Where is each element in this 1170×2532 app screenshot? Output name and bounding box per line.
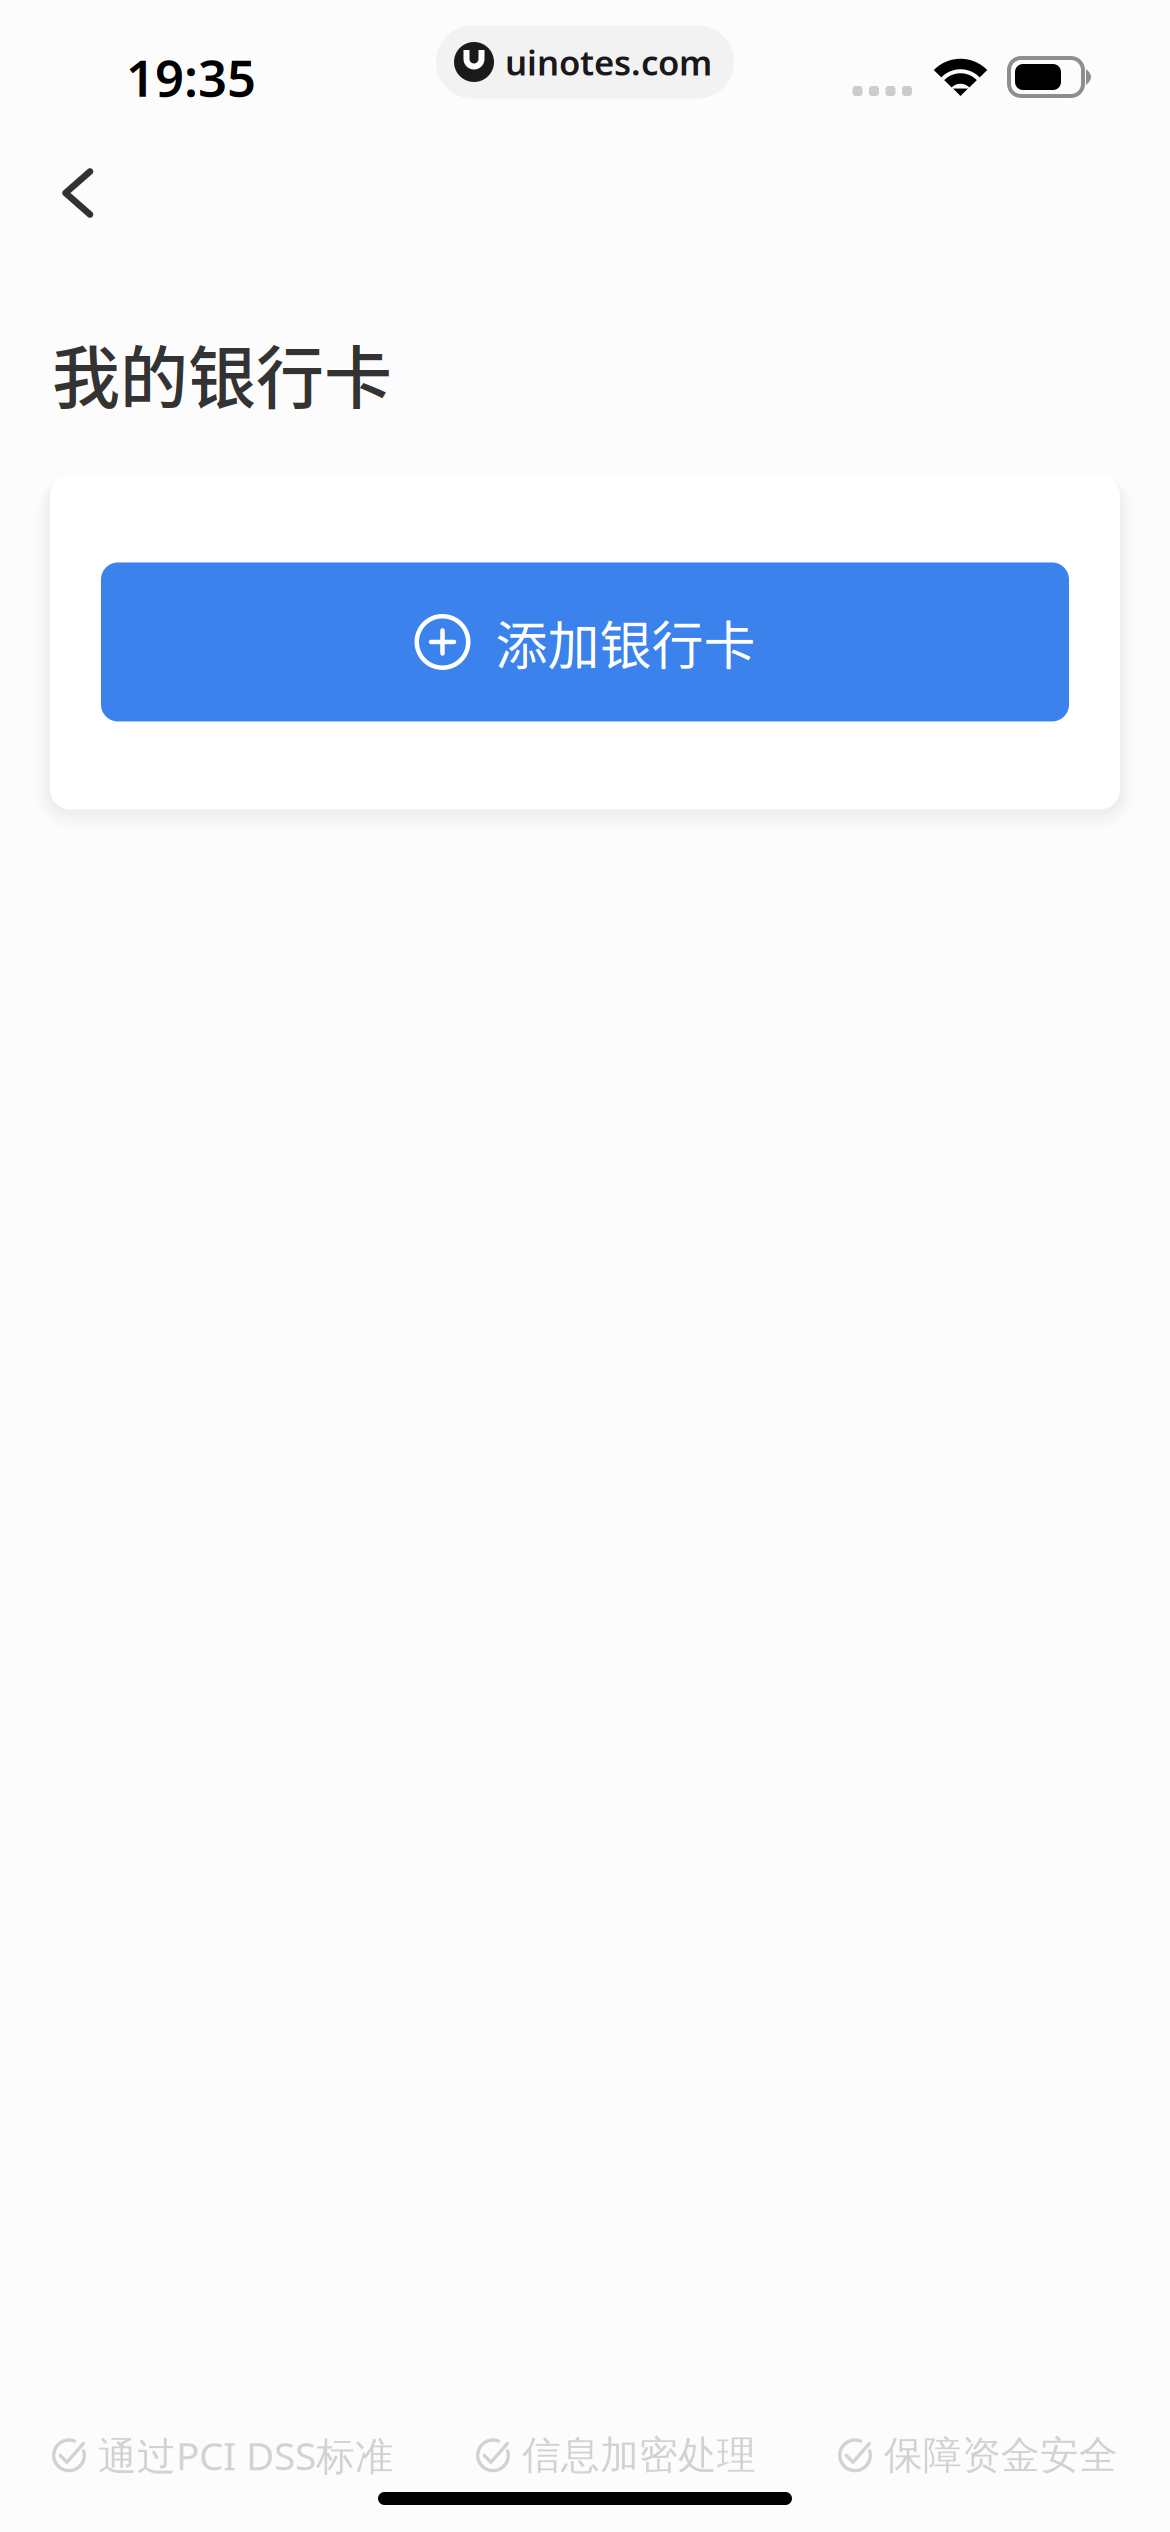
staticText: uinotes.com <box>505 39 712 85</box>
staticText: 通过PCI DSS标准 <box>98 2430 394 2481</box>
staticText: 19:35 <box>126 43 256 111</box>
button[interactable]: 添加银行卡 <box>101 562 1069 721</box>
staticText: 我的银行卡 <box>52 324 392 422</box>
button[interactable]: Back <box>0 146 127 240</box>
staticText: 保障资金安全 <box>884 2432 1118 2479</box>
staticText: 添加银行卡 <box>495 604 755 680</box>
staticText: 信息加密处理 <box>522 2432 756 2479</box>
